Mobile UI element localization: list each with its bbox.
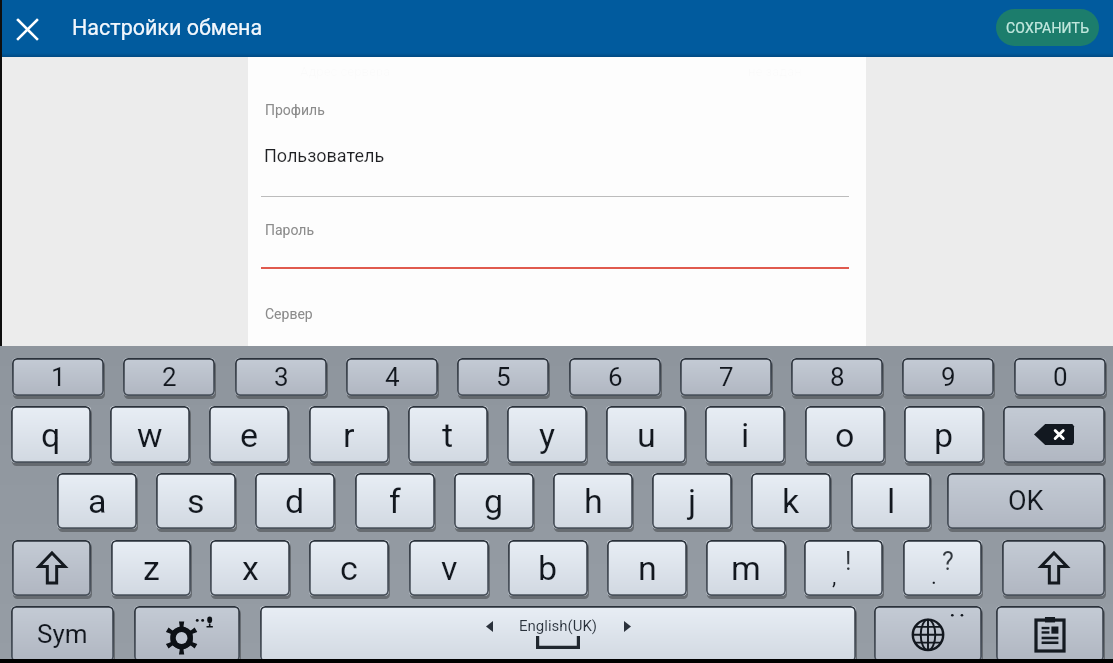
staticText: h [584,481,603,521]
staticText: 4 [385,362,400,392]
staticText: 0 [1053,362,1068,392]
button[interactable]: a [57,473,137,529]
button[interactable]: l [851,473,931,529]
staticText: 7 [719,362,734,392]
button[interactable]: y [507,406,587,463]
staticText: y [539,415,556,455]
staticText: СОХРАНИТЬ [1006,20,1090,36]
button[interactable]: Change input language [874,606,982,662]
button[interactable]: f [355,473,435,529]
staticText: r [343,415,355,455]
button[interactable]: w [110,406,190,463]
staticText: 6 [608,362,623,392]
button[interactable]: s [156,473,236,529]
staticText: Sym [37,619,88,649]
button[interactable]: n [607,540,687,596]
button[interactable]: j [652,473,732,529]
staticText: Пароль [265,222,315,238]
button[interactable]: z [111,540,191,596]
button[interactable]: Keyboard settings [134,606,240,662]
button[interactable]: 8 [791,358,883,396]
button[interactable]: Shift [1002,540,1105,596]
button[interactable]: t [408,406,488,463]
staticText: Настройки обмена [72,15,263,40]
staticText: b [538,548,558,588]
button[interactable]: r [309,406,389,463]
staticText: ! [845,547,852,576]
staticText: n [638,548,657,588]
button[interactable]: Shift [12,540,91,596]
staticText: i [741,415,750,455]
staticText: English(UK) [519,617,598,635]
staticText: w [137,415,163,455]
button[interactable]: 1 [12,358,104,396]
staticText: Пользователь [264,145,385,166]
button[interactable]: v [409,540,489,596]
staticText: v [441,548,458,588]
button[interactable]: p [904,406,984,463]
button[interactable]: 6 [569,358,661,396]
staticText: o [835,415,855,455]
staticText: z [143,548,160,588]
button[interactable]: Sym [11,606,114,662]
staticText: 2 [162,362,177,392]
staticText: 8 [830,362,845,392]
staticText: Сервер [265,306,313,322]
staticText: 3 [274,362,289,392]
button[interactable]: 9 [902,358,994,396]
staticText: m [731,548,761,588]
staticText: l [887,481,896,521]
button[interactable]: Close [9,11,45,47]
staticText: , [832,564,837,590]
staticText: s [187,481,205,521]
button[interactable]: Backspace [1003,406,1105,463]
button[interactable]: OK [947,473,1105,529]
button[interactable]: x [210,540,290,596]
button[interactable]: 4 [346,358,438,396]
staticText: 1 [51,362,66,392]
staticText: k [782,481,800,521]
staticText: u [637,415,656,455]
staticText: c [340,548,358,588]
button[interactable]: e [209,406,289,463]
button[interactable]: 5 [457,358,549,396]
staticText: ? [942,547,954,576]
button[interactable]: Comma [804,540,883,596]
button[interactable]: k [751,473,831,529]
staticText: a [88,481,107,521]
staticText: d [285,481,305,521]
button[interactable]: 0 [1014,358,1106,396]
button[interactable]: 2 [123,358,215,396]
staticText: q [41,415,61,455]
staticText: Профиль [265,102,325,118]
staticText: g [484,481,504,521]
button[interactable]: h [553,473,633,529]
button[interactable]: d [255,473,335,529]
button[interactable]: 3 [235,358,327,396]
staticText: 5 [496,362,511,392]
staticText: e [240,415,259,455]
staticText: j [688,481,697,521]
staticText: t [442,415,454,455]
button[interactable]: g [454,473,534,529]
staticText: OK [1008,485,1044,517]
button[interactable]: c [309,540,389,596]
button[interactable]: i [705,406,785,463]
button[interactable]: 7 [680,358,772,396]
button[interactable]: Clipboard [996,606,1104,662]
button[interactable]: Space [260,606,856,662]
button[interactable]: Period [903,540,982,596]
button[interactable]: u [606,406,686,463]
staticText: f [389,481,401,521]
staticText: x [242,548,259,588]
staticText: 9 [941,362,956,392]
staticText: p [934,415,954,455]
button[interactable]: o [805,406,885,463]
button[interactable]: m [706,540,786,596]
button[interactable]: q [11,406,91,463]
button[interactable]: СОХРАНИТЬ [996,9,1099,46]
staticText: . [931,564,937,590]
button[interactable]: b [508,540,588,596]
